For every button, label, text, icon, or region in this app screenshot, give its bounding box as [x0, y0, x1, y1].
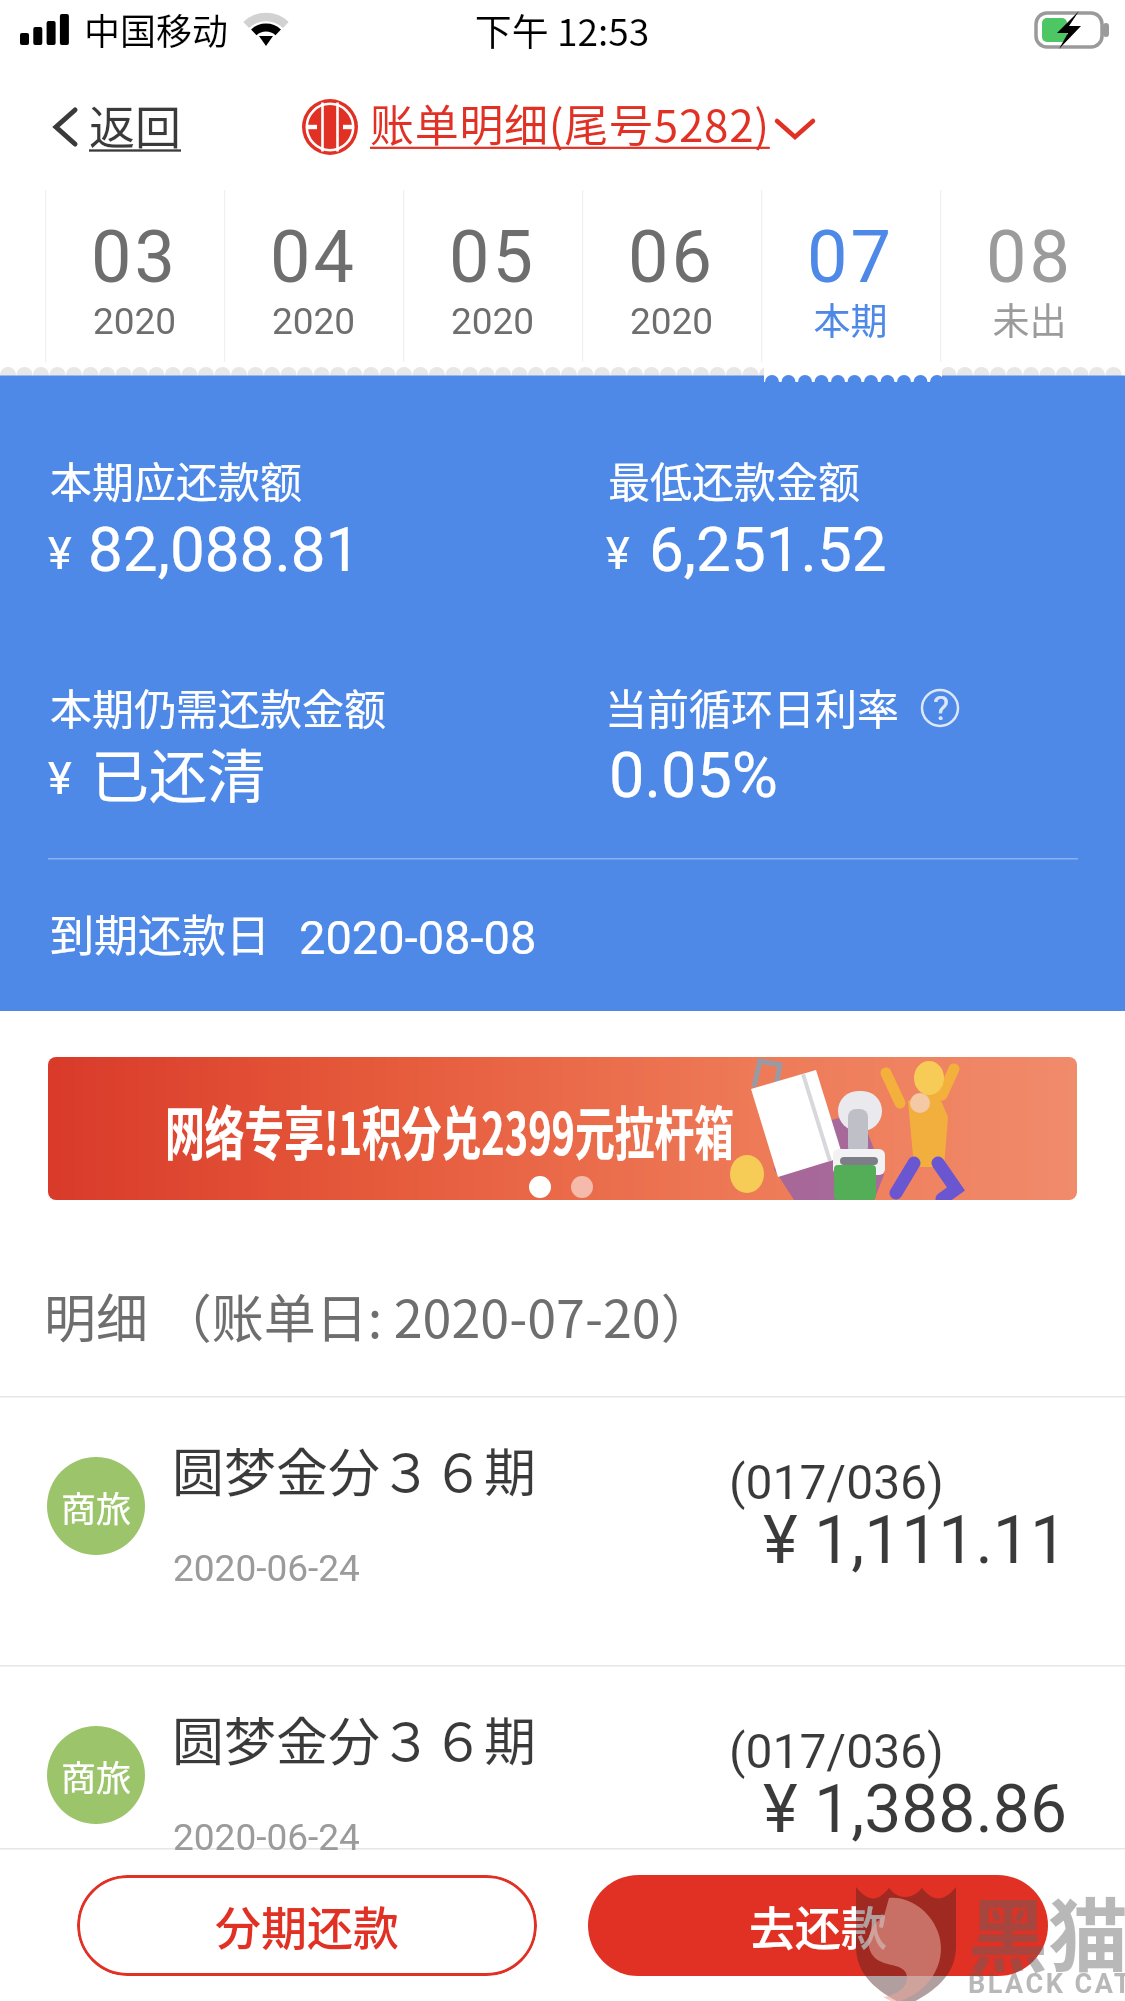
staticText: 圆梦金分３６期	[172, 1701, 537, 1776]
staticText: BLACK CAT	[968, 1968, 1125, 2000]
staticText: 当前循环日利率	[605, 676, 900, 737]
staticText: 去还款	[749, 1892, 887, 1959]
staticText: ¥ 1,111.11	[0, 1502, 1067, 1579]
staticText: 2020	[582, 300, 761, 343]
staticText: 06	[582, 215, 761, 299]
staticText: 本期仍需还款金额	[50, 676, 387, 737]
staticText: (017/036)	[729, 1454, 944, 1510]
button[interactable]: 圆梦金分３６期	[0, 1665, 1125, 1934]
staticText: ¥	[606, 527, 630, 580]
staticText: 最低还款金额	[608, 449, 861, 510]
staticText: 账单明细(尾号5282)	[370, 91, 770, 155]
staticText: 圆梦金分３６期	[172, 1432, 537, 1507]
staticText: ¥	[48, 752, 72, 805]
staticText: 黑猫	[968, 1872, 1125, 1988]
button[interactable]: 05	[403, 185, 582, 376]
staticText: 商旅	[61, 1481, 132, 1532]
staticText: 82,088.81	[88, 513, 361, 586]
staticText: 03	[45, 215, 224, 299]
staticText: 2020	[45, 300, 224, 343]
button[interactable]: 分期还款	[77, 1875, 537, 1976]
staticText: 2020	[224, 300, 403, 343]
staticText: 中国移动	[84, 3, 229, 55]
staticText: 04	[224, 215, 403, 299]
staticText: 明细 （账单日: 2020-07-20）	[44, 1278, 713, 1353]
staticText: ¥ 1,388.86	[0, 1771, 1067, 1848]
staticText: 08	[940, 215, 1119, 299]
staticText: 返回	[89, 91, 181, 158]
staticText: (017/036)	[729, 1723, 944, 1779]
staticText: 07	[761, 215, 940, 299]
staticText: 2020-06-24	[173, 1816, 360, 1859]
button[interactable]: 利率说明	[921, 689, 959, 727]
staticText: 2020-06-24	[173, 1547, 360, 1590]
button[interactable]: 08	[940, 185, 1119, 376]
staticText: 分期还款	[215, 1892, 399, 1959]
button[interactable]: 账单明细(尾号5282)	[295, 84, 825, 162]
button[interactable]: 圆梦金分３６期	[0, 1396, 1125, 1665]
staticText: 网络专享!1积分兑2399元拉杆箱	[165, 1088, 734, 1172]
staticText: 6,251.52	[649, 513, 887, 586]
button[interactable]: 去还款	[588, 1875, 1048, 1976]
button[interactable]: 04	[224, 185, 403, 376]
staticText: ¥	[48, 527, 72, 580]
button[interactable]: 返回	[30, 85, 200, 161]
staticText: 本期	[761, 292, 940, 346]
staticText: ?	[933, 688, 950, 726]
button[interactable]: 07	[761, 185, 940, 376]
staticText: 到期还款日	[50, 901, 270, 965]
staticText: 下午 12:53	[262, 3, 862, 57]
staticText: 未出	[940, 292, 1119, 346]
button[interactable]: 03	[45, 185, 224, 376]
staticText: 0.05%	[609, 739, 778, 813]
staticText: 已还清	[91, 731, 266, 815]
button[interactable]: 网络专享!1积分兑2399元拉杆箱	[48, 1057, 1077, 1200]
staticText: 05	[403, 215, 582, 299]
staticText: 商旅	[61, 1750, 132, 1801]
staticText: 2020-08-08	[299, 910, 537, 965]
button[interactable]: 06	[582, 185, 761, 376]
staticText: 2020	[403, 300, 582, 343]
staticText: 本期应还款额	[50, 449, 303, 510]
